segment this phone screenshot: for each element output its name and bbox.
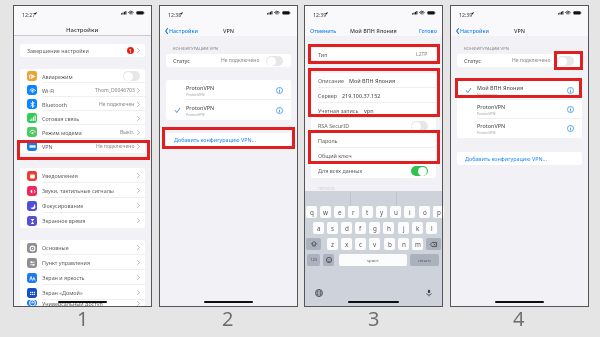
- button[interactable]: Уведомления: [20, 168, 145, 183]
- staticText: l: [431, 224, 433, 233]
- button[interactable]: q: [306, 206, 317, 218]
- button[interactable]: b: [384, 238, 395, 250]
- button[interactable]: Добавить конфигурацию VPN...: [457, 152, 582, 165]
- button[interactable]: Включить: [411, 121, 428, 131]
- button[interactable]: l: [426, 222, 437, 234]
- button[interactable]: Пункт управления: [20, 255, 145, 270]
- button[interactable]: Авиарежим: [20, 69, 145, 83]
- button[interactable]: ProtonVPN: [166, 100, 291, 120]
- staticText: Для всех данных: [318, 167, 363, 174]
- button[interactable]: Статус: [166, 54, 291, 67]
- button[interactable]: Подробнее: [567, 125, 574, 132]
- button[interactable]: Сотовая связь: [20, 111, 145, 125]
- button[interactable]: y: [376, 206, 387, 218]
- button[interactable]: Return: [410, 254, 439, 266]
- button[interactable]: u: [390, 206, 401, 218]
- button[interactable]: Экран и яркость: [20, 270, 145, 285]
- button[interactable]: Включить: [123, 71, 140, 81]
- button[interactable]: Основные: [20, 240, 145, 255]
- staticText: p: [437, 208, 441, 217]
- button[interactable]: ProtonVPN: [166, 80, 291, 100]
- button[interactable]: Режим модема: [20, 125, 145, 139]
- staticText: ProtonVPN: [186, 104, 215, 111]
- button[interactable]: Мой ВПН Япония: [457, 81, 582, 100]
- button[interactable]: Экранное время: [20, 213, 145, 228]
- button[interactable]: VPN: [20, 139, 145, 153]
- button[interactable]: Добавить конфигурацию VPN...: [166, 133, 291, 146]
- button[interactable]: Диктовка: [425, 289, 433, 297]
- button[interactable]: Отменить: [305, 25, 341, 36]
- button[interactable]: Сменить язык: [315, 289, 323, 297]
- button[interactable]: Shift: [306, 238, 321, 250]
- staticText: Экран «Домой»: [42, 289, 83, 296]
- staticText: x: [345, 240, 349, 249]
- staticText: Уведомления: [42, 172, 78, 179]
- button[interactable]: RSA SecurID: [311, 118, 436, 133]
- button[interactable]: r: [348, 206, 359, 218]
- button[interactable]: i: [404, 206, 415, 218]
- staticText: ProtonVPN: [186, 92, 205, 97]
- button[interactable]: Подробнее: [276, 107, 283, 114]
- button[interactable]: g: [369, 222, 380, 234]
- staticText: Не подключено: [512, 57, 551, 64]
- button[interactable]: s: [327, 222, 338, 234]
- button[interactable]: p: [433, 206, 444, 218]
- button[interactable]: Emoji: [323, 254, 334, 266]
- button[interactable]: Подробнее: [276, 87, 283, 94]
- button[interactable]: Для всех данных: [311, 163, 436, 178]
- button[interactable]: a: [313, 222, 324, 234]
- button[interactable]: Описание: [311, 73, 436, 88]
- button[interactable]: w: [320, 206, 331, 218]
- button[interactable]: Статус: [457, 54, 582, 67]
- button[interactable]: Подробнее: [567, 87, 574, 94]
- button[interactable]: Пароль: [311, 133, 436, 148]
- staticText: y: [380, 208, 384, 217]
- button[interactable]: Numbers: [307, 254, 320, 266]
- staticText: Отменить: [310, 27, 337, 34]
- button[interactable]: o: [419, 206, 430, 218]
- button[interactable]: v: [369, 238, 380, 250]
- button[interactable]: t: [362, 206, 373, 218]
- button[interactable]: e: [334, 206, 345, 218]
- button[interactable]: x: [341, 238, 352, 250]
- button[interactable]: j: [398, 222, 409, 234]
- button[interactable]: Готово: [414, 25, 442, 36]
- button[interactable]: Настройки: [451, 25, 493, 36]
- button[interactable]: Учетная запись: [311, 103, 436, 118]
- staticText: 4: [513, 305, 525, 327]
- button[interactable]: Настройки: [160, 25, 202, 36]
- button[interactable]: m: [412, 238, 423, 250]
- button[interactable]: Подробнее: [567, 106, 574, 113]
- button[interactable]: z: [327, 238, 338, 250]
- staticText: Режим модема: [42, 129, 82, 136]
- button[interactable]: d: [341, 222, 352, 234]
- button[interactable]: Выключить: [411, 166, 428, 176]
- button[interactable]: Тип: [311, 48, 436, 60]
- button[interactable]: Фокусирование: [20, 198, 145, 213]
- button[interactable]: Общий ключ: [311, 148, 436, 163]
- button[interactable]: Включить: [557, 56, 574, 66]
- button[interactable]: ProtonVPN: [457, 119, 582, 138]
- staticText: Статус: [173, 57, 190, 64]
- staticText: o: [423, 208, 427, 217]
- button[interactable]: Bluetooth: [20, 97, 145, 111]
- button[interactable]: Сервер: [311, 88, 436, 103]
- staticText: Готово: [419, 27, 437, 34]
- button[interactable]: f: [355, 222, 366, 234]
- button[interactable]: c: [355, 238, 366, 250]
- button[interactable]: n: [398, 238, 409, 250]
- button[interactable]: Звуки, тактильные сигналы: [20, 183, 145, 198]
- button[interactable]: space: [339, 254, 407, 266]
- button[interactable]: Экран «Домой»: [20, 285, 145, 300]
- button[interactable]: Универсальный доступ: [20, 300, 145, 306]
- button[interactable]: Backspace: [426, 238, 441, 250]
- button[interactable]: ProtonVPN: [457, 100, 582, 119]
- button[interactable]: Wi-Fi: [20, 83, 145, 97]
- staticText: u: [394, 208, 398, 217]
- button[interactable]: k: [412, 222, 423, 234]
- button[interactable]: h: [383, 222, 394, 234]
- staticText: ProtonVPN: [477, 130, 496, 135]
- staticText: g: [373, 224, 377, 233]
- button[interactable]: Завершение настройки: [20, 44, 145, 57]
- button[interactable]: Включить: [266, 56, 283, 66]
